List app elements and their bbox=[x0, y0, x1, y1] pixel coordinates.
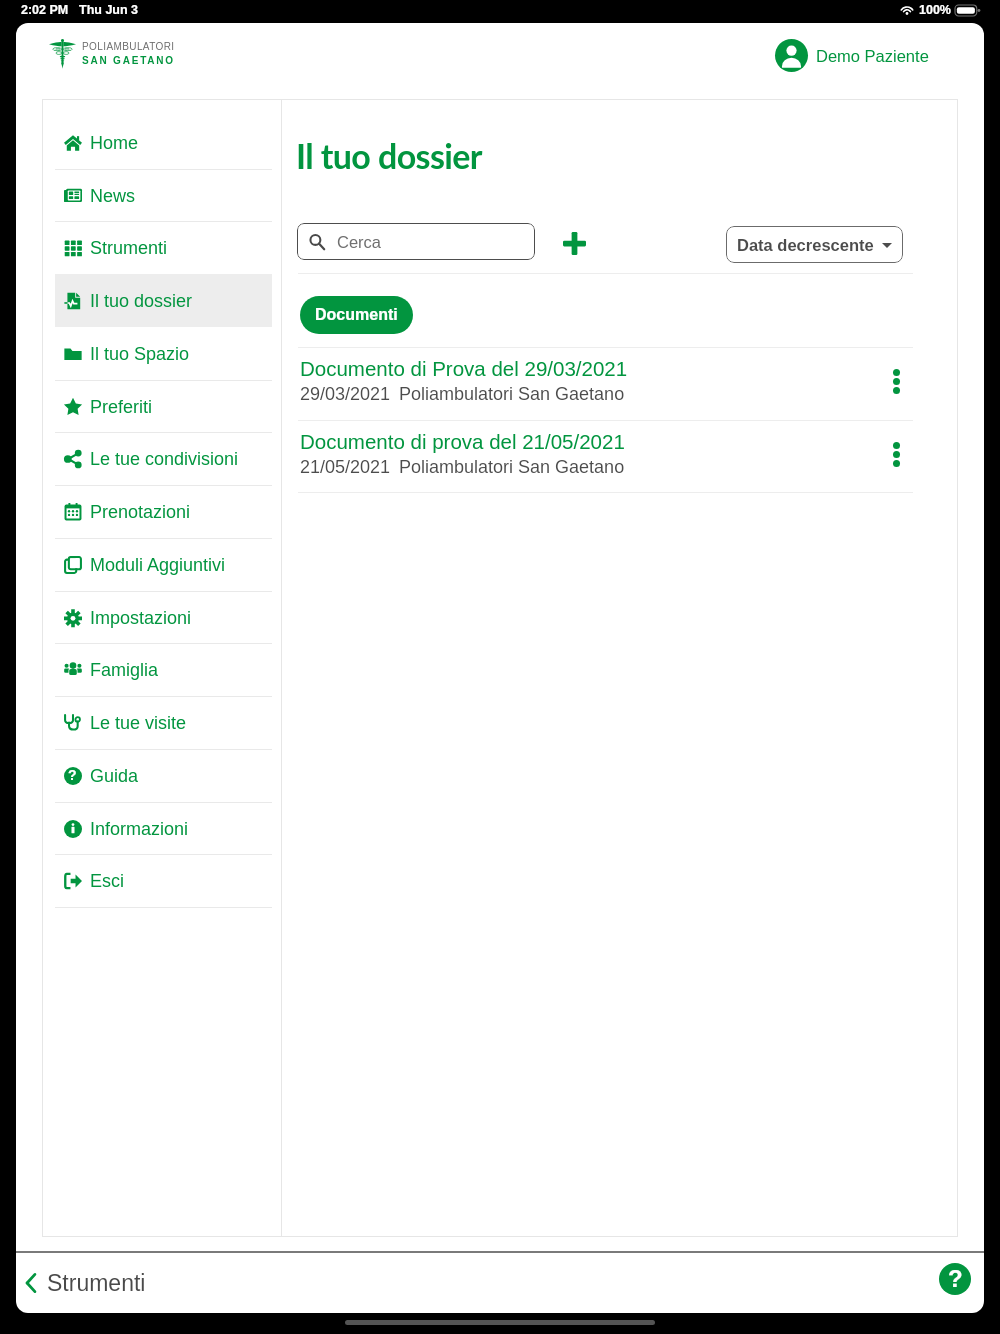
staticText: Poliambulatori San Gaetano bbox=[399, 384, 625, 404]
button[interactable]: Prenotazioni bbox=[55, 485, 272, 538]
staticText: 29/03/2021 bbox=[300, 384, 391, 404]
staticText: Informazioni bbox=[90, 819, 189, 839]
button[interactable]: News bbox=[55, 169, 272, 222]
button[interactable]: Le tue condivisioni bbox=[55, 432, 272, 485]
staticText: Prenotazioni bbox=[90, 502, 191, 522]
button[interactable]: Data decrescente bbox=[726, 226, 903, 263]
button[interactable]: Altre opzioni bbox=[876, 434, 916, 474]
button[interactable]: Aggiungi documento bbox=[550, 219, 599, 268]
staticText: Documenti bbox=[315, 306, 398, 324]
button[interactable]: Strumenti bbox=[18, 1264, 152, 1302]
button[interactable]: Documenti bbox=[300, 296, 413, 334]
button[interactable]: Il tuo Spazio bbox=[55, 327, 272, 380]
staticText: Preferiti bbox=[90, 397, 153, 417]
button[interactable]: Demo Paziente bbox=[775, 39, 929, 72]
staticText: Thu Jun 3 bbox=[79, 3, 139, 17]
staticText: Moduli Aggiuntivi bbox=[90, 555, 226, 575]
button[interactable]: Strumenti bbox=[55, 221, 272, 274]
staticText: Il tuo Spazio bbox=[90, 344, 190, 364]
staticText: ? bbox=[68, 767, 77, 783]
staticText: Documento di prova del 21/05/2021 bbox=[300, 430, 625, 453]
button[interactable]: Esci bbox=[55, 854, 272, 907]
button[interactable]: Altre opzioni bbox=[876, 361, 916, 401]
staticText: Data decrescente bbox=[737, 236, 874, 254]
button[interactable]: Home bbox=[55, 116, 272, 169]
staticText: POLIAMBULATORI bbox=[82, 41, 175, 52]
staticText: 21/05/2021 bbox=[300, 457, 391, 477]
staticText: Guida bbox=[90, 766, 139, 786]
button[interactable]: Documento di Prova del 29/03/2021 bbox=[298, 348, 913, 420]
button[interactable]: Documento di prova del 21/05/2021 bbox=[298, 421, 913, 493]
button[interactable]: Informazioni bbox=[55, 802, 272, 855]
staticText: Impostazioni bbox=[90, 608, 192, 628]
staticText: Demo Paziente bbox=[816, 47, 929, 65]
button[interactable]: Impostazioni bbox=[55, 591, 272, 644]
staticText: 100% bbox=[919, 3, 951, 17]
button[interactable]: Le tue visite bbox=[55, 696, 272, 749]
staticText: News bbox=[90, 186, 136, 206]
staticText: Home bbox=[90, 133, 139, 153]
button[interactable]: Preferiti bbox=[55, 380, 272, 433]
button[interactable]: Guida bbox=[939, 1263, 971, 1295]
button[interactable]: ? bbox=[55, 749, 272, 802]
staticText: Documento di Prova del 29/03/2021 bbox=[300, 357, 628, 380]
staticText: Le tue condivisioni bbox=[90, 449, 239, 469]
staticText: Strumenti bbox=[47, 1270, 146, 1296]
button[interactable]: Cerca bbox=[297, 223, 535, 260]
staticText: Il tuo dossier bbox=[90, 291, 193, 311]
staticText: Poliambulatori San Gaetano bbox=[399, 457, 625, 477]
button[interactable]: Il tuo dossier bbox=[55, 274, 272, 327]
staticText: Esci bbox=[90, 871, 125, 891]
staticText: Strumenti bbox=[90, 238, 168, 258]
button[interactable]: Famiglia bbox=[55, 643, 272, 696]
button[interactable]: Moduli Aggiuntivi bbox=[55, 538, 272, 591]
staticText: SAN GAETANO bbox=[82, 55, 175, 66]
staticText: Il tuo dossier bbox=[296, 135, 482, 176]
staticText: 2:02 PM bbox=[21, 3, 69, 17]
staticText: Famiglia bbox=[90, 660, 159, 680]
staticText: Le tue visite bbox=[90, 713, 187, 733]
staticText: Cerca bbox=[337, 233, 382, 251]
staticText: ? bbox=[948, 1265, 963, 1292]
